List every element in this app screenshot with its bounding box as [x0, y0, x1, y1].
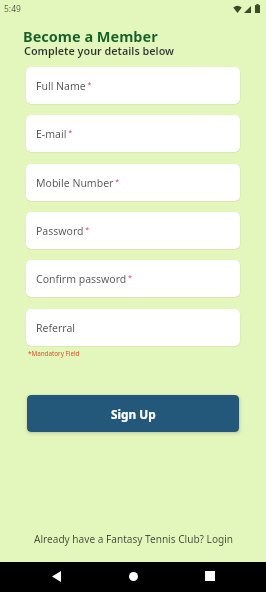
staticText: *Mandatory Field [28, 349, 80, 358]
button[interactable]: Confirm password * [26, 260, 240, 297]
staticText: Confirm password * [36, 272, 132, 286]
staticText: 5:49 [4, 3, 21, 15]
staticText: Sign Up [111, 406, 156, 422]
button[interactable]: Password * [26, 212, 240, 249]
button[interactable]: Referral [26, 309, 240, 346]
staticText: Full Name * [36, 79, 92, 93]
button[interactable]: Back [38, 562, 74, 592]
staticText: Complete your details below [24, 43, 175, 58]
staticText: Become a Member [23, 26, 158, 46]
button[interactable]: Sign Up [27, 395, 239, 432]
staticText: E-mail * [36, 127, 73, 141]
staticText: Password * [36, 224, 90, 238]
staticText: Already have a Fantasy Tennis Club? Logi… [34, 532, 234, 546]
button[interactable]: Home [115, 562, 151, 592]
button[interactable]: E-mail * [26, 115, 240, 152]
staticText: Referral [36, 321, 76, 335]
button[interactable]: Recents [191, 562, 227, 592]
button[interactable]: Already have a Fantasy Tennis Club? Logi… [0, 531, 266, 547]
button[interactable]: Full Name * [26, 67, 240, 104]
staticText: Mobile Number * [36, 176, 120, 190]
button[interactable]: Mobile Number * [26, 164, 240, 201]
